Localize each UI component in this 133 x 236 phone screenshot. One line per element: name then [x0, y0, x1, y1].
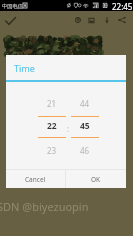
button[interactable]: Photo: [84, 13, 98, 27]
staticText: 22:45: [112, 1, 133, 12]
staticText: 中国电信: [2, 3, 23, 10]
staticText: 22: [47, 120, 57, 132]
button[interactable]: Timer: [71, 13, 85, 27]
button[interactable]: Record audio: [100, 13, 114, 27]
button[interactable]: Share: [115, 13, 129, 27]
staticText: 21: [47, 98, 57, 109]
button[interactable]: Cancel: [6, 170, 65, 188]
staticText: 45: [80, 120, 90, 132]
staticText: 44: [80, 98, 90, 109]
staticText: :: [67, 123, 70, 132]
staticText: Cancel: [25, 175, 46, 184]
button[interactable]: Done: [2, 13, 18, 29]
staticText: 46: [80, 145, 90, 156]
staticText: 23: [47, 145, 57, 156]
staticText: OK: [91, 175, 101, 184]
staticText: SDN @biyezuopin: [0, 199, 89, 214]
staticText: Time: [14, 62, 35, 74]
button[interactable]: OK: [66, 170, 126, 188]
